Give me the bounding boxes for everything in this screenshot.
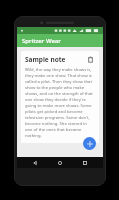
- button[interactable]: Recent apps: [78, 157, 92, 168]
- staticText: Wild, the way they make shows is, they m…: [25, 67, 95, 139]
- staticText: Sample note: [25, 55, 86, 64]
- button[interactable]: Sample note: [21, 51, 99, 143]
- button[interactable]: Delete note: [86, 55, 95, 64]
- staticText: Spritzer Wear: [22, 37, 61, 45]
- button[interactable]: Add note: [83, 137, 96, 150]
- button[interactable]: Home: [53, 157, 67, 168]
- button[interactable]: Back: [28, 157, 42, 168]
